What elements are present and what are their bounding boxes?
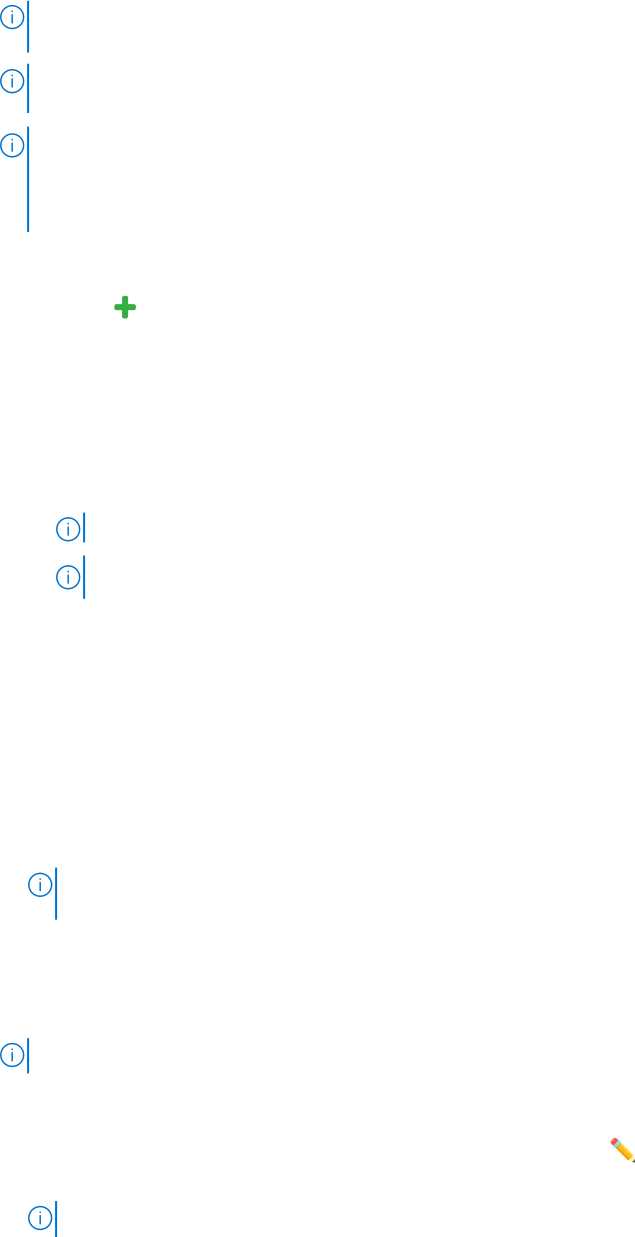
staticText: ✏️: [609, 1137, 635, 1163]
button[interactable]: Add item: [114, 296, 136, 318]
button[interactable]: Edit: [609, 1137, 635, 1163]
